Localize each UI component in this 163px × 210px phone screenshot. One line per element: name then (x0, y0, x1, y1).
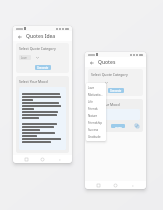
staticText: Quotes Idea (26, 33, 56, 40)
staticText: Life (88, 100, 93, 104)
staticText: Select Your Mood (91, 102, 120, 107)
staticText: Select Quote Category (91, 72, 128, 77)
staticText: Gratitude (88, 135, 101, 139)
button[interactable]: Back (129, 182, 136, 189)
button[interactable]: Nature (86, 112, 106, 119)
staticText: Love (21, 56, 27, 60)
button[interactable]: Generate (108, 88, 124, 93)
button[interactable]: Life (86, 98, 106, 105)
staticText: Friends (88, 107, 98, 111)
staticText: Friendship (88, 121, 102, 125)
button[interactable]: Friends (86, 105, 106, 112)
staticText: Motivational (88, 93, 104, 97)
button[interactable]: Recents (23, 156, 30, 163)
button[interactable]: Back (16, 33, 23, 40)
staticText: Nature (88, 114, 98, 118)
button[interactable]: Success (86, 126, 106, 133)
button[interactable]: Back (56, 156, 63, 163)
staticText: Success (88, 128, 99, 132)
button[interactable]: Friendship (86, 119, 106, 126)
button[interactable]: Home (112, 182, 119, 189)
button[interactable]: Generate (35, 65, 51, 70)
staticText: Select Your Mood (19, 79, 48, 84)
button[interactable]: Home (39, 156, 46, 163)
staticText: Quotes (98, 59, 116, 66)
button[interactable]: Recents (95, 182, 102, 189)
button[interactable]: Back (88, 59, 95, 66)
button[interactable]: Motivational (86, 91, 106, 98)
button[interactable]: Gratitude (86, 133, 106, 140)
staticText: Share (115, 125, 122, 128)
staticText: Love (88, 86, 95, 90)
staticText: Select Quote Category (19, 46, 56, 51)
button[interactable]: Copy (134, 123, 140, 129)
button[interactable]: Love (86, 84, 106, 91)
staticText: Generate (110, 89, 122, 93)
staticText: Generate (37, 66, 49, 70)
button[interactable]: Love (19, 55, 31, 60)
button[interactable]: Share (111, 124, 125, 128)
